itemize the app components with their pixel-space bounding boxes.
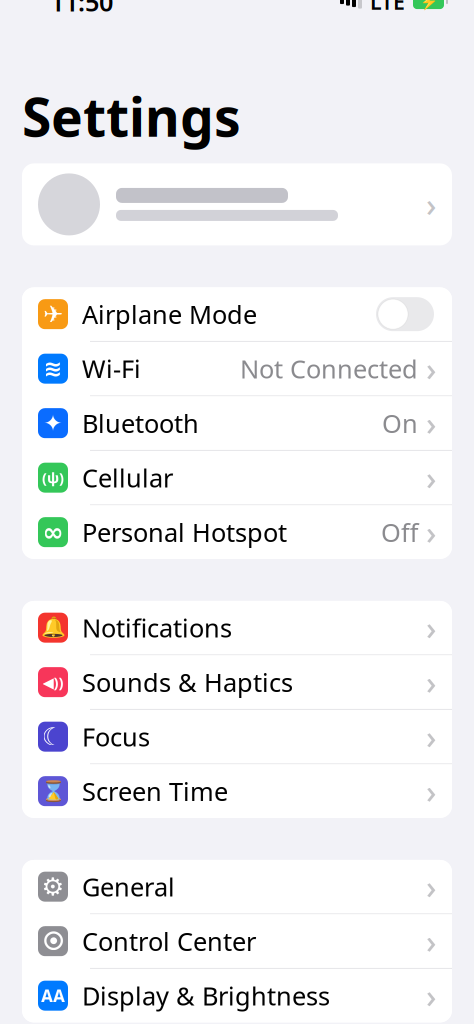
staticText: Display & Brightness <box>82 979 330 1012</box>
staticText: ∞ <box>42 518 63 547</box>
staticText: Cellular <box>82 461 173 494</box>
button[interactable]: AA <box>22 969 452 1022</box>
button[interactable]: ☾ <box>22 710 452 763</box>
staticText: Sounds & Haptics <box>82 665 293 699</box>
staticText: › <box>426 661 436 703</box>
staticText: 🔔 <box>40 616 65 639</box>
staticText: Settings <box>22 81 241 151</box>
button[interactable]: › <box>0 163 474 245</box>
staticText: ⚙ <box>41 872 64 901</box>
staticText: › <box>426 347 436 390</box>
staticText: ✦ <box>43 410 62 436</box>
staticText: › <box>426 715 436 758</box>
staticText: ✈ <box>43 300 63 328</box>
staticText: Personal Hotspot <box>82 515 287 549</box>
staticText: ≋ <box>43 356 62 381</box>
staticText: › <box>426 183 436 226</box>
button[interactable]: ∞ <box>22 505 452 559</box>
staticText: Airplane Mode <box>82 297 257 331</box>
staticText: Notifications <box>82 611 232 644</box>
button[interactable]: ◀)) <box>22 655 452 709</box>
staticText: › <box>426 865 436 908</box>
staticText: › <box>426 511 436 553</box>
staticText: AA <box>41 984 65 1007</box>
staticText: › <box>426 402 436 444</box>
button[interactable]: (ψ) <box>22 451 452 504</box>
button[interactable]: ✦ <box>22 396 452 450</box>
staticText: Bluetooth <box>82 406 199 440</box>
staticText: Focus <box>82 720 150 753</box>
staticText: LTE <box>370 0 405 16</box>
staticText: › <box>426 974 436 1017</box>
staticText: Control Center <box>82 924 256 958</box>
button[interactable]: ✈ <box>22 287 452 341</box>
button[interactable]: ⚙ <box>22 860 452 913</box>
staticText: › <box>426 770 436 812</box>
staticText: Wi-Fi <box>82 352 141 385</box>
staticText: › <box>426 456 436 499</box>
button[interactable]: ⌛ <box>22 764 452 818</box>
staticText: 11:50 <box>50 0 113 18</box>
staticText: ◀)) <box>42 672 63 692</box>
button[interactable]: ≋ <box>22 342 452 395</box>
button[interactable]: ⦿ <box>22 914 452 968</box>
staticText: Off <box>381 515 418 549</box>
staticText: (ψ) <box>42 468 64 487</box>
staticText: ⦿ <box>42 931 63 952</box>
staticText: › <box>426 606 436 649</box>
button[interactable]: 🔔 <box>22 601 452 654</box>
staticText: ☾ <box>41 722 64 751</box>
staticText: ⚡ <box>419 0 437 10</box>
staticText: ⌛ <box>40 780 65 803</box>
staticText: Not Connected <box>240 352 418 385</box>
staticText: Screen Time <box>82 774 228 808</box>
staticText: › <box>426 920 436 962</box>
staticText: On <box>382 406 418 440</box>
staticText: General <box>82 870 175 903</box>
